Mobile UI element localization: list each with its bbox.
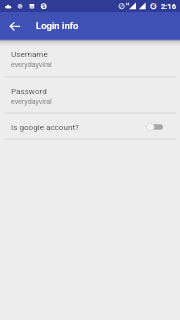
- staticText: Password: [11, 86, 47, 95]
- staticText: 2:16: [161, 2, 176, 11]
- staticText: Username: [11, 49, 48, 58]
- button[interactable]: Is google account?: [0, 116, 180, 137]
- staticText: everydayviral: [11, 60, 52, 68]
- staticText: Login info: [36, 20, 79, 31]
- staticText: Is google account?: [11, 122, 79, 131]
- staticText: everydayviral: [11, 97, 52, 105]
- button[interactable]: Navigate up: [0, 12, 28, 39]
- button[interactable]: Username: [0, 49, 180, 74]
- button[interactable]: Password: [0, 86, 180, 111]
